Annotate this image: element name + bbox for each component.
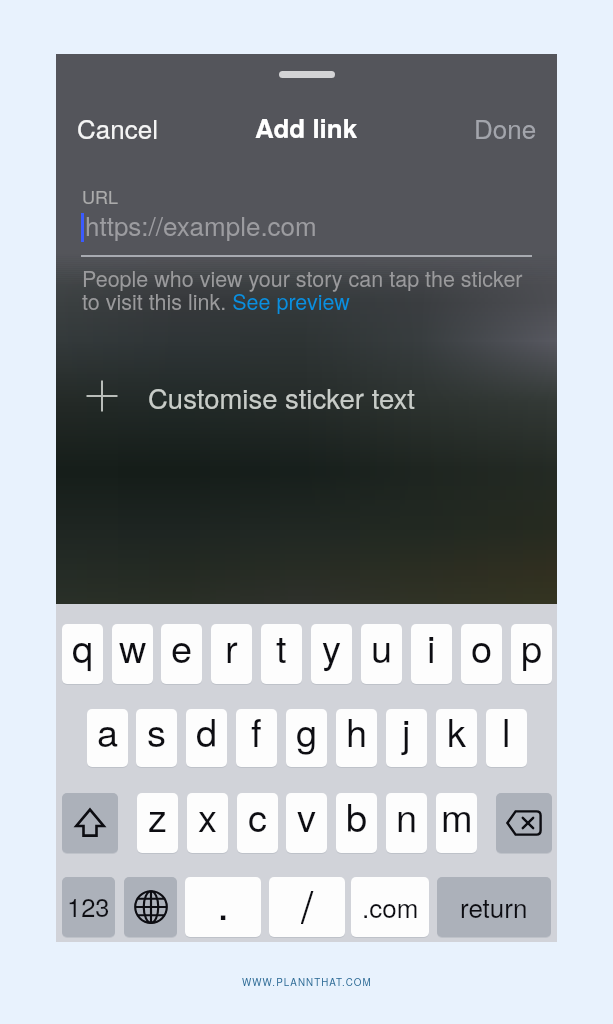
staticText: Done (474, 109, 537, 146)
staticText: n (396, 793, 418, 842)
staticText: z (148, 793, 168, 842)
button[interactable]: Next keyboard (124, 877, 177, 937)
button[interactable]: e (161, 624, 202, 684)
staticText: t (276, 624, 287, 673)
staticText: c (248, 793, 268, 842)
staticText: s (147, 709, 167, 757)
button[interactable]: r (211, 624, 252, 684)
button[interactable]: v (286, 793, 327, 853)
staticText: f (251, 709, 262, 757)
button[interactable]: q (62, 624, 103, 684)
button[interactable]: / (269, 877, 345, 937)
button[interactable]: p (511, 624, 552, 684)
button[interactable]: w (112, 624, 153, 684)
button[interactable]: Shift (62, 793, 118, 853)
button[interactable]: Backspace (496, 793, 552, 853)
staticText: 123 (67, 888, 110, 925)
button[interactable]: y (311, 624, 352, 684)
button[interactable]: s (136, 709, 177, 767)
button[interactable]: d (186, 709, 227, 767)
staticText: .com (362, 888, 419, 925)
staticText: d (196, 709, 218, 757)
staticText: https://example.com (85, 206, 317, 243)
button[interactable]: n (386, 793, 427, 853)
button[interactable]: g (286, 709, 327, 767)
staticText: m (441, 793, 473, 842)
staticText: k (447, 709, 467, 757)
staticText: q (72, 624, 94, 673)
button[interactable]: o (461, 624, 502, 684)
button[interactable]: u (361, 624, 402, 684)
staticText: WWW.PLANNTHAT.COM (242, 975, 372, 989)
staticText: . (217, 877, 230, 929)
button[interactable]: . (185, 877, 261, 937)
staticText: h (346, 709, 368, 757)
button[interactable]: h (336, 709, 377, 767)
button[interactable]: .com (351, 877, 429, 937)
staticText: i (427, 624, 436, 673)
staticText: URL (82, 183, 118, 209)
staticText: Add link (255, 109, 358, 146)
staticText: Customise sticker text (148, 377, 415, 416)
button[interactable]: x (187, 793, 228, 853)
staticText: return (460, 888, 528, 925)
staticText: a (97, 709, 119, 757)
staticText: o (471, 624, 493, 673)
button[interactable]: c (237, 793, 278, 853)
staticText: / (301, 877, 314, 932)
staticText: x (198, 793, 218, 842)
staticText: Cancel (77, 109, 158, 146)
staticText: l (502, 709, 511, 757)
staticText: People who view your story can tap the s… (82, 262, 534, 316)
button[interactable]: z (137, 793, 178, 853)
button[interactable]: Done (436, 106, 537, 148)
button[interactable]: t (261, 624, 302, 684)
staticText: v (297, 793, 317, 842)
button[interactable]: l (486, 709, 527, 767)
button[interactable]: i (411, 624, 452, 684)
button[interactable]: return (437, 877, 551, 937)
button[interactable]: Customise sticker text (56, 366, 557, 426)
button[interactable]: k (436, 709, 477, 767)
staticText: w (119, 624, 147, 673)
button[interactable]: Cancel (77, 106, 158, 148)
staticText: g (296, 709, 318, 757)
button[interactable]: m (436, 793, 477, 853)
button[interactable]: j (386, 709, 427, 767)
button[interactable]: a (87, 709, 128, 767)
staticText: u (371, 624, 393, 673)
button[interactable]: b (336, 793, 377, 853)
staticText: b (346, 793, 368, 842)
staticText: j (402, 709, 411, 757)
button[interactable]: 123 (62, 877, 115, 937)
staticText: r (225, 624, 238, 673)
staticText: e (171, 624, 193, 673)
staticText: p (521, 624, 543, 673)
staticText: y (322, 624, 342, 673)
button[interactable]: f (236, 709, 277, 767)
